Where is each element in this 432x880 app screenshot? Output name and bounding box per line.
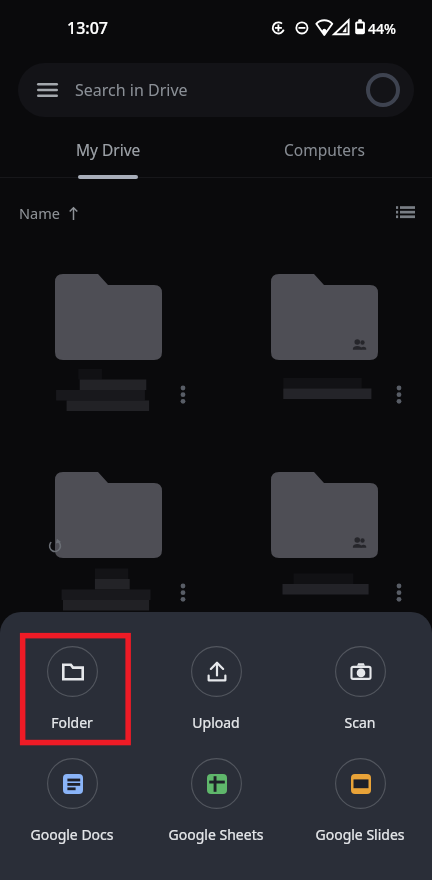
button[interactable]: More options xyxy=(173,383,193,409)
button[interactable]: More options xyxy=(173,581,193,607)
button[interactable]: My Drive xyxy=(0,124,216,176)
staticText: Scan xyxy=(305,713,415,732)
staticText: My Drive xyxy=(76,139,141,160)
staticText: Name xyxy=(19,203,60,223)
staticText: Google Slides xyxy=(305,825,415,844)
button[interactable]: Name xyxy=(19,203,79,223)
staticText: Computers xyxy=(284,139,365,160)
button[interactable]: Computers xyxy=(216,124,432,176)
button[interactable]: More options xyxy=(25,464,192,610)
button[interactable]: Google Docs xyxy=(17,758,127,846)
staticText: 44% xyxy=(368,19,396,38)
button[interactable]: More options xyxy=(25,266,192,412)
other: Open navigation menu xyxy=(37,83,58,97)
staticText: 13:07 xyxy=(67,17,108,39)
button[interactable]: Account and settings xyxy=(366,73,400,107)
staticText: Folder xyxy=(17,713,127,732)
button[interactable]: Scan xyxy=(305,646,415,734)
staticText: Google Sheets xyxy=(161,825,271,844)
button[interactable]: Open navigation menu xyxy=(18,63,414,117)
staticText: Search in Drive xyxy=(75,79,188,101)
button[interactable]: More options xyxy=(241,266,408,412)
button[interactable]: Switch to list view xyxy=(390,198,420,226)
button[interactable]: Upload xyxy=(161,646,271,734)
button[interactable]: Google Sheets xyxy=(161,758,271,846)
button[interactable]: Folder xyxy=(17,646,127,734)
button[interactable]: Google Slides xyxy=(305,758,415,846)
staticText: Google Docs xyxy=(17,825,127,844)
button[interactable]: More options xyxy=(389,581,409,607)
button[interactable]: More options xyxy=(241,464,408,610)
staticText: Upload xyxy=(161,713,271,732)
button[interactable]: More options xyxy=(389,383,409,409)
